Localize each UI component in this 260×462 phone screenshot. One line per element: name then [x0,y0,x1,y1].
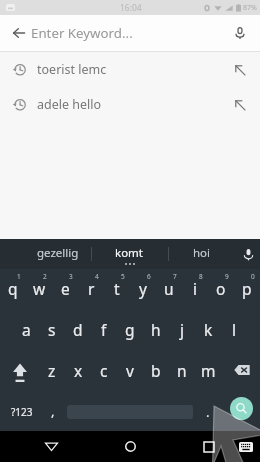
button[interactable]: 9 [208,269,234,310]
staticText: gezellig [37,245,79,261]
staticText: g [125,319,135,340]
button[interactable]: 1 [0,269,26,310]
button[interactable]: f [91,310,117,351]
staticText: v [126,360,134,381]
button[interactable]: a [13,310,39,351]
staticText: 0 [251,272,255,281]
button[interactable]: 8 [182,269,208,310]
button[interactable]: z [39,351,65,392]
button[interactable]: Shift [0,351,39,392]
button[interactable]: d [65,310,91,351]
button[interactable]: Back [0,15,36,51]
staticText: hoi [193,245,211,261]
staticText: j [180,319,184,340]
staticText: 5 [121,272,125,281]
button[interactable]: 2 [26,269,52,310]
staticText: r [88,278,95,299]
staticText: k [204,319,213,340]
staticText: q [8,278,18,299]
staticText: d [73,319,83,340]
staticText: h [151,319,161,340]
button[interactable]: n [169,351,195,392]
staticText: . [206,403,210,421]
staticText: 16:04 [120,2,142,14]
button[interactable]: adele hello [0,87,260,122]
button[interactable]: l [221,310,247,351]
staticText: a [22,319,31,340]
button[interactable]: Voice input [236,239,260,269]
staticText: 7 [173,272,177,281]
button[interactable]: Recent apps [189,431,229,462]
button[interactable]: b [143,351,169,392]
staticText: 4 [95,272,99,281]
staticText: w [33,278,46,299]
button[interactable]: j [169,310,195,351]
button[interactable]: 0 [234,269,260,310]
staticText: , [51,402,55,420]
button[interactable]: komt [91,239,168,269]
button[interactable]: 4 [78,269,104,310]
staticText: y [139,278,147,299]
staticText: z [48,360,56,381]
staticText: u [164,278,174,299]
button[interactable]: Search [230,397,253,420]
button[interactable]: Backspace [221,351,260,392]
button[interactable]: m [195,351,221,392]
staticText: ?123 [11,405,33,419]
staticText: toerist lemc [37,61,107,78]
staticText: l [232,319,236,340]
staticText: i [193,278,197,299]
staticText: 3 [69,272,73,281]
button[interactable]: h [143,310,169,351]
button[interactable]: toerist lemc [0,52,260,87]
staticText: 9 [225,272,229,281]
staticText: o [216,278,226,299]
staticText: c [100,360,108,381]
button[interactable]: x [65,351,91,392]
button[interactable]: 5 [104,269,130,310]
button[interactable]: hoi [168,239,236,269]
button[interactable]: c [91,351,117,392]
button[interactable]: . [193,392,223,431]
staticText: m [201,360,216,381]
button[interactable]: 6 [130,269,156,310]
button[interactable]: , [44,392,67,431]
staticText: x [74,360,83,381]
button[interactable]: v [117,351,143,392]
staticText: 1 [17,272,21,281]
staticText: s [48,319,56,340]
button[interactable]: Switch keyboard [232,431,260,462]
button[interactable]: g [117,310,143,351]
staticText: Enter Keyword... [31,24,215,42]
staticText: adele hello [37,96,102,113]
button[interactable]: k [195,310,221,351]
button[interactable]: Home [110,431,150,462]
staticText: 87% [243,3,257,13]
staticText: komt [115,245,144,261]
staticText: n [177,360,187,381]
staticText: 6 [147,272,151,281]
button[interactable]: Voice search [220,15,260,51]
button[interactable]: ?123 [0,392,44,431]
staticText: 2 [43,272,47,281]
button[interactable]: 3 [52,269,78,310]
staticText: b [151,360,161,381]
button[interactable]: gezellig [24,239,91,269]
button[interactable]: 7 [156,269,182,310]
staticText: 8 [199,272,203,281]
button[interactable]: s [39,310,65,351]
staticText: p [242,278,252,299]
button[interactable]: Back [31,431,71,462]
staticText: f [101,319,107,340]
staticText: e [61,278,70,299]
staticText: t [114,278,120,299]
